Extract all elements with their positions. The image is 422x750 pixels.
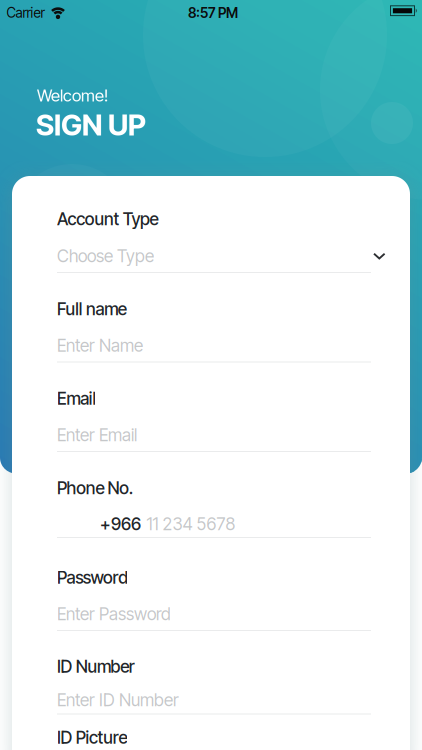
staticText: Full name	[57, 299, 127, 319]
staticText: Carrier	[6, 4, 44, 21]
staticText: Account Type	[57, 209, 159, 229]
staticText: Email	[57, 388, 96, 409]
staticText: ID Picture	[57, 727, 127, 748]
staticText: ID Number	[57, 656, 135, 677]
button[interactable]: Enter Password	[57, 604, 371, 632]
button[interactable]: Enter Name	[57, 335, 371, 363]
staticText: Welcome!	[37, 85, 108, 105]
staticText: Enter Password	[57, 604, 171, 624]
staticText: Choose Type	[57, 246, 154, 266]
button[interactable]: Enter ID Number	[57, 690, 371, 715]
staticText: SIGN UP	[36, 107, 146, 143]
staticText: +966	[100, 514, 141, 534]
button[interactable]: +966	[57, 514, 371, 540]
staticText: Enter Email	[57, 425, 137, 445]
staticText: 8:57 PM	[188, 5, 238, 21]
staticText: Enter Name	[57, 335, 143, 356]
button[interactable]: Enter Email	[57, 425, 371, 453]
button[interactable]: Choose Type	[57, 246, 422, 750]
staticText: 11 234 5678	[146, 514, 235, 534]
staticText: Password	[57, 567, 128, 588]
staticText: Enter ID Number	[57, 690, 179, 710]
staticText: Phone No.	[57, 478, 133, 498]
